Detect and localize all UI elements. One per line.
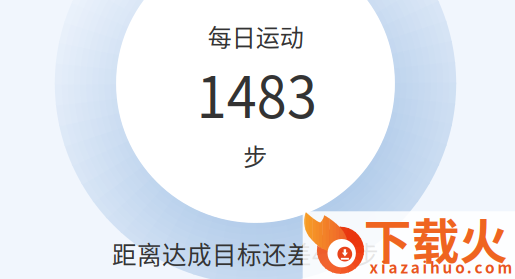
staticText: xiazaihuo.com: [369, 256, 513, 278]
staticText: 下载火: [364, 203, 508, 273]
staticText: 步: [243, 138, 267, 173]
staticText: 距离达成目标还差450步: [112, 236, 379, 271]
staticText: 每日运动: [208, 19, 304, 53]
staticText: 1483: [193, 51, 321, 134]
